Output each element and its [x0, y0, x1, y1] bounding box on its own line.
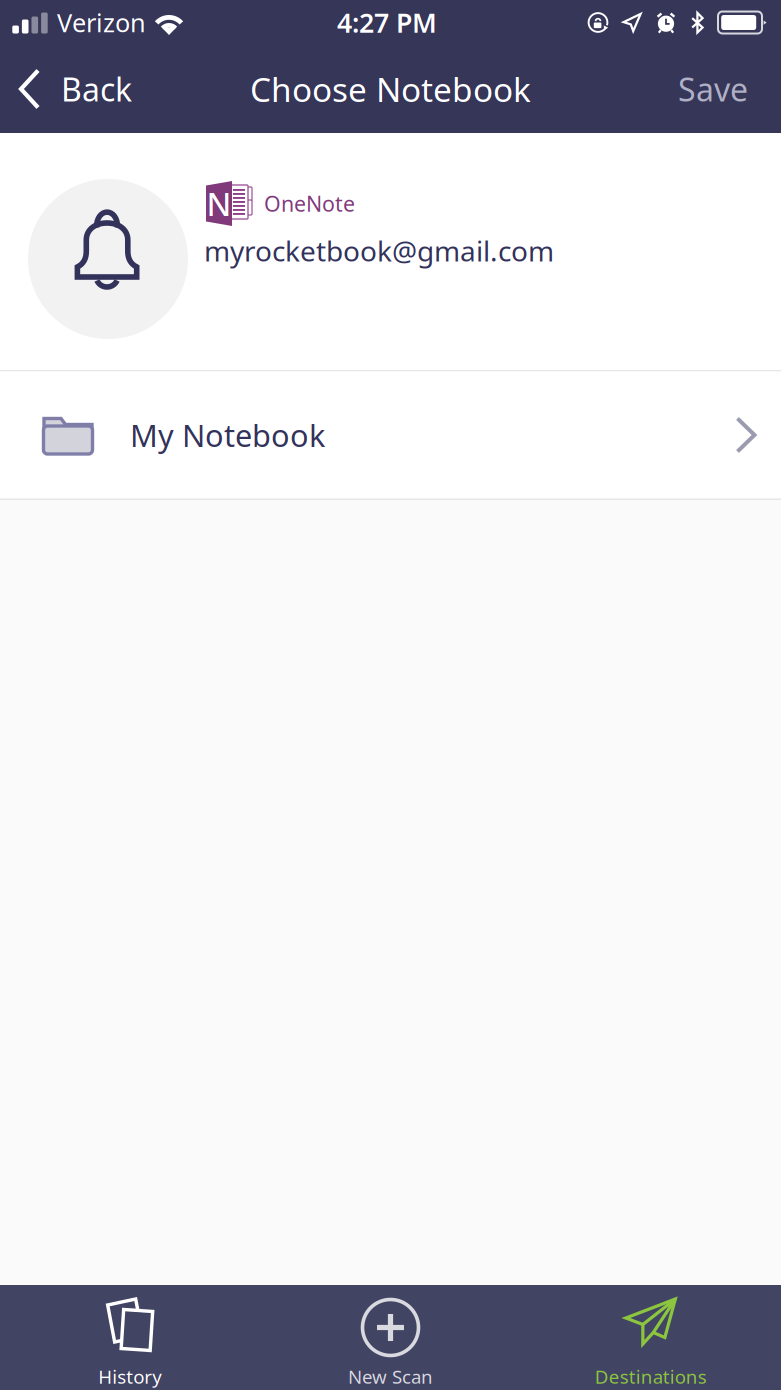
button[interactable]: My Notebook	[0, 371, 781, 498]
button[interactable]: Save	[654, 46, 781, 132]
staticText: Choose Notebook	[250, 67, 531, 111]
staticText: myrocketbook@gmail.com	[204, 232, 554, 269]
button[interactable]: Back	[0, 46, 150, 132]
button[interactable]: Destinations	[521, 1285, 781, 1390]
staticText: Back	[61, 68, 132, 110]
staticText: My Notebook	[130, 415, 325, 455]
staticText: Verizon	[57, 6, 146, 39]
staticText: N	[206, 182, 231, 225]
staticText: OneNote	[264, 189, 355, 218]
button[interactable]: History	[0, 1285, 260, 1390]
button[interactable]: New Scan	[260, 1285, 521, 1390]
staticText: New Scan	[348, 1364, 433, 1389]
staticText: Save	[678, 68, 748, 110]
staticText: History	[98, 1364, 162, 1389]
staticText: Destinations	[595, 1364, 707, 1389]
staticText: 4:27 PM	[337, 5, 437, 40]
